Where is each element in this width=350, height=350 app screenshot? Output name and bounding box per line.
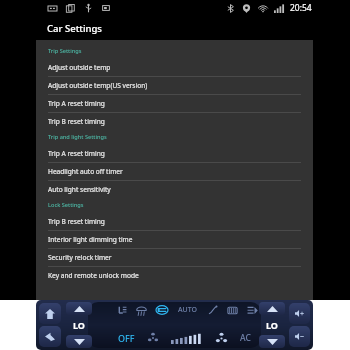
button[interactable]: Key and remote unlock mode bbox=[36, 266, 313, 284]
staticText: 20:54 bbox=[290, 2, 312, 14]
button[interactable]: Temp up right bbox=[259, 302, 285, 315]
button[interactable]: Trip A reset timing bbox=[36, 144, 313, 162]
button[interactable]: Rear window defrost bbox=[227, 305, 238, 316]
button[interactable]: Security relock timer bbox=[36, 248, 313, 266]
staticText: Trip B reset timing bbox=[48, 217, 105, 226]
button[interactable]: Headlight auto off timer bbox=[36, 162, 313, 180]
staticText: Key and remote unlock mode bbox=[48, 271, 139, 280]
staticText: Interior light dimming time bbox=[48, 235, 133, 244]
button[interactable]: Trip B reset timing bbox=[36, 212, 313, 230]
button[interactable]: Fan up bbox=[216, 333, 227, 344]
staticText: Trip A reset timing bbox=[48, 99, 105, 108]
button[interactable]: Auto light sensitivity bbox=[36, 180, 313, 198]
button[interactable]: Fan speed bbox=[171, 333, 203, 344]
button[interactable]: Temp down left bbox=[66, 335, 92, 348]
button[interactable]: Rear defrost bbox=[116, 305, 127, 316]
staticText: OFF bbox=[118, 332, 135, 344]
staticText: LO bbox=[73, 319, 85, 331]
button[interactable]: Air flow bbox=[208, 305, 218, 315]
button[interactable]: Trip A reset timing bbox=[36, 94, 313, 112]
button[interactable]: Temp up left bbox=[66, 302, 92, 315]
staticText: LO bbox=[266, 319, 278, 331]
staticText: Trip B reset timing bbox=[48, 117, 105, 126]
staticText: Car Settings bbox=[47, 22, 102, 35]
staticText: Security relock timer bbox=[48, 253, 112, 262]
button[interactable]: Mode bbox=[247, 305, 258, 316]
staticText: Trip A reset timing bbox=[48, 149, 105, 158]
button[interactable]: Windshield defog bbox=[136, 305, 147, 316]
staticText: AC bbox=[240, 332, 251, 344]
staticText: Adjust outside temp bbox=[48, 63, 111, 72]
button[interactable]: Trip B reset timing bbox=[36, 112, 313, 130]
staticText: AUTO bbox=[178, 305, 198, 315]
staticText: Adjust outside temp(US version) bbox=[48, 81, 148, 90]
button[interactable]: Temp down right bbox=[259, 335, 285, 348]
staticText: Trip Settings bbox=[48, 47, 82, 55]
button[interactable]: Adjust outside temp(US version) bbox=[36, 76, 313, 94]
staticText: Auto light sensitivity bbox=[48, 185, 111, 194]
button[interactable]: AC bbox=[240, 332, 251, 344]
button[interactable]: Home bbox=[39, 303, 61, 324]
button[interactable]: Interior light dimming time bbox=[36, 230, 313, 248]
button[interactable]: Back bbox=[39, 326, 61, 347]
staticText: Headlight auto off timer bbox=[48, 167, 123, 176]
button[interactable]: Volume down bbox=[289, 326, 310, 347]
button[interactable]: Recirculation bbox=[156, 304, 168, 316]
button[interactable]: Adjust outside temp bbox=[36, 58, 313, 76]
button[interactable]: Volume up bbox=[289, 303, 310, 324]
button[interactable]: OFF bbox=[118, 332, 135, 344]
staticText: Trip and light Settings bbox=[48, 133, 107, 141]
button[interactable]: AUTO bbox=[177, 305, 199, 315]
button[interactable]: Fan down bbox=[148, 333, 158, 343]
staticText: Lock Settings bbox=[48, 201, 84, 209]
